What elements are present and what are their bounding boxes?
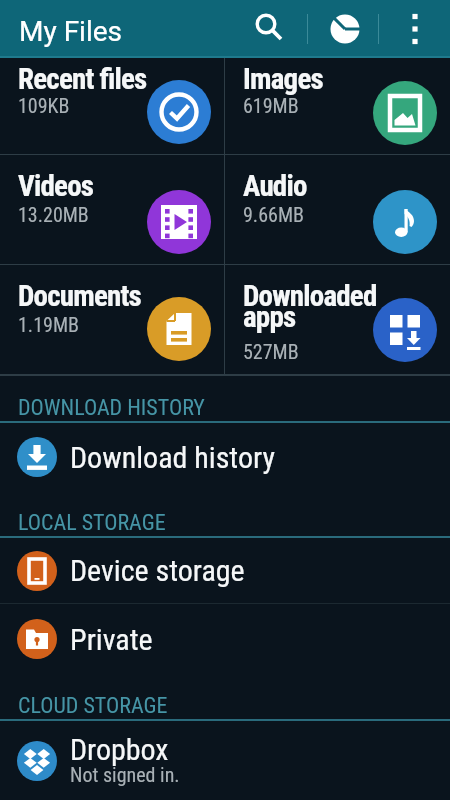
staticText: CLOUD STORAGE — [18, 693, 168, 719]
staticText: Documents — [18, 279, 141, 313]
button[interactable] — [379, 0, 450, 58]
button[interactable]: Documents — [0, 265, 224, 374]
button[interactable]: Audio — [225, 155, 450, 264]
button[interactable]: Dropbox — [0, 721, 450, 800]
staticText: Downloaded apps — [243, 279, 394, 334]
staticText: Videos — [18, 169, 94, 203]
staticText: Recent files — [18, 62, 147, 96]
button[interactable]: Private — [0, 604, 450, 674]
button[interactable]: Download history — [0, 423, 450, 491]
button[interactable]: Downloaded apps — [225, 265, 450, 374]
staticText: 109KB — [18, 94, 70, 117]
staticText: 1.19MB — [18, 313, 79, 336]
staticText: Device storage — [70, 553, 245, 588]
staticText: My Files — [19, 15, 123, 48]
staticText: Dropbox — [70, 732, 169, 767]
button[interactable]: Images — [225, 58, 450, 154]
staticText: 527MB — [243, 340, 299, 363]
staticText: 13.20MB — [18, 203, 89, 226]
button[interactable]: Recent files — [0, 58, 224, 154]
staticText: LOCAL STORAGE — [18, 510, 166, 536]
button[interactable] — [241, 0, 297, 58]
button[interactable]: Videos — [0, 155, 224, 264]
staticText: 619MB — [243, 94, 299, 117]
button[interactable]: Device storage — [0, 538, 450, 603]
staticText: 9.66MB — [243, 203, 304, 226]
staticText: Private — [70, 622, 153, 657]
staticText: DOWNLOAD HISTORY — [18, 395, 205, 421]
staticText: Images — [243, 62, 323, 96]
button[interactable] — [316, 0, 374, 58]
staticText: Audio — [243, 169, 307, 203]
staticText: Download history — [70, 440, 275, 475]
staticText: Not signed in. — [70, 763, 180, 786]
